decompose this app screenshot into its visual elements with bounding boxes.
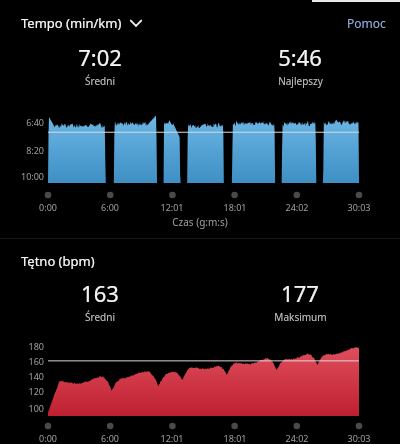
staticText: 30:03 — [335, 201, 383, 213]
button[interactable]: Tętno (bpm) — [0, 250, 400, 272]
staticText: Tempo (min/km) — [21, 14, 122, 32]
staticText: 180 — [12, 340, 44, 352]
staticText: 10:00 — [8, 170, 44, 182]
staticText: 5:46 — [278, 42, 322, 72]
staticText: 0:00 — [24, 201, 72, 213]
staticText: 18:01 — [211, 432, 259, 444]
staticText: 30:03 — [335, 432, 383, 444]
staticText: 163 — [81, 278, 119, 308]
staticText: 6:00 — [86, 201, 134, 213]
staticText: 120 — [12, 385, 44, 397]
staticText: 100 — [12, 402, 44, 414]
staticText: 160 — [12, 355, 44, 367]
button[interactable]: Pomoc — [339, 10, 394, 36]
button[interactable]: Tempo (min/km) — [21, 12, 143, 34]
staticText: 12:01 — [148, 201, 196, 213]
staticText: 18:01 — [211, 201, 259, 213]
staticText: Pomoc — [347, 15, 386, 31]
staticText: Najlepszy — [278, 74, 323, 88]
staticText: 6:00 — [86, 432, 134, 444]
staticText: 24:02 — [273, 432, 321, 444]
staticText: 0:00 — [24, 432, 72, 444]
staticText: 6:40 — [14, 116, 44, 128]
staticText: 12:01 — [148, 432, 196, 444]
staticText: 8:20 — [14, 144, 44, 156]
staticText: 177 — [281, 278, 319, 308]
other: Change metric — [129, 17, 143, 29]
staticText: Średni — [85, 74, 115, 88]
staticText: 7:02 — [78, 42, 122, 72]
staticText: Czas (g:m:s) — [0, 215, 400, 229]
staticText: Maksimum — [274, 310, 327, 324]
staticText: 24:02 — [273, 201, 321, 213]
staticText: 140 — [12, 370, 44, 382]
staticText: Średni — [85, 310, 115, 324]
staticText: Tętno (bpm) — [21, 252, 95, 270]
